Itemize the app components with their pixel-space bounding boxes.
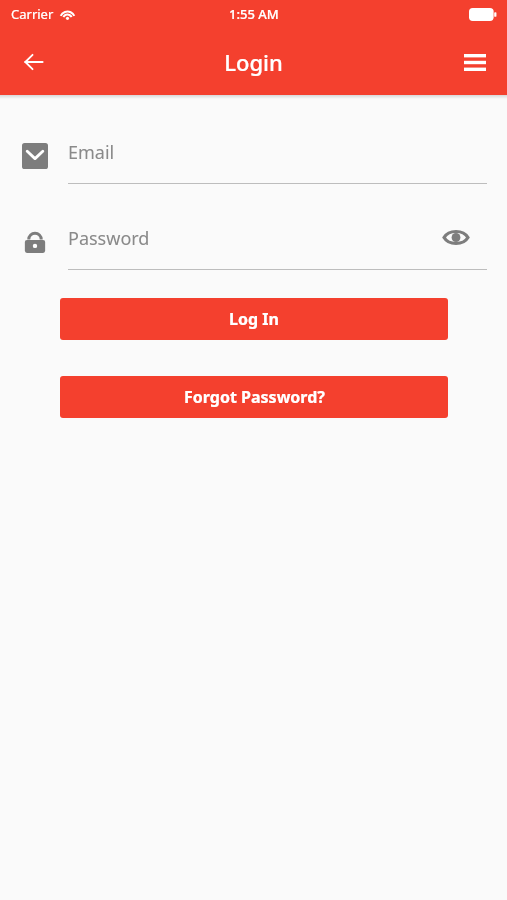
button[interactable]: Menu [451,38,499,86]
button[interactable]: Show password [434,215,478,259]
staticText: Carrier [11,5,54,23]
staticText: Password [68,226,150,251]
staticText: Email [68,140,115,165]
button[interactable]: Back [10,38,58,86]
staticText: Login [224,47,283,77]
staticText: Log In [229,308,279,330]
staticText: 1:55 AM [229,5,279,23]
button[interactable]: Password [68,214,487,270]
button[interactable]: Log In [60,298,448,340]
button[interactable]: Email [68,128,487,184]
staticText: Forgot Password? [184,386,325,408]
button[interactable]: Forgot Password? [60,376,448,418]
